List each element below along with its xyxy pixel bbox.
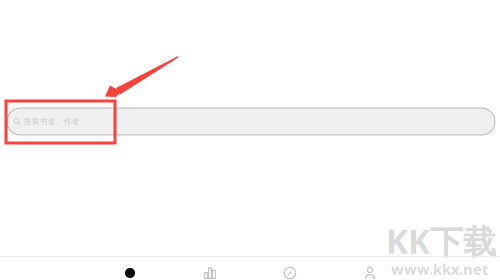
button[interactable]: 我的	[330, 262, 410, 280]
staticText: 搜索书名、作者	[23, 117, 79, 126]
button[interactable]: 发现	[250, 262, 330, 280]
button[interactable]: 排行	[170, 262, 250, 280]
button[interactable]: 搜索书名、作者	[7, 108, 495, 135]
button[interactable]: 书架	[90, 262, 170, 280]
staticText: www.kkx.net	[391, 259, 488, 279]
staticText: KK下载	[386, 219, 496, 263]
